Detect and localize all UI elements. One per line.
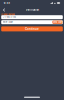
staticText: Send code <box>53 21 62 23</box>
staticText: Enter code <box>3 21 13 24</box>
staticText: Verification <box>25 8 38 11</box>
staticText: Continue <box>25 27 39 31</box>
staticText: Phone number <box>1 13 15 16</box>
staticText: +1 555 0134 <box>3 16 17 19</box>
button[interactable]: Send code <box>52 21 62 24</box>
button[interactable]: Continue <box>1 26 63 31</box>
staticText: 9:41 <box>4 1 10 5</box>
button[interactable]: Back <box>3 8 6 12</box>
